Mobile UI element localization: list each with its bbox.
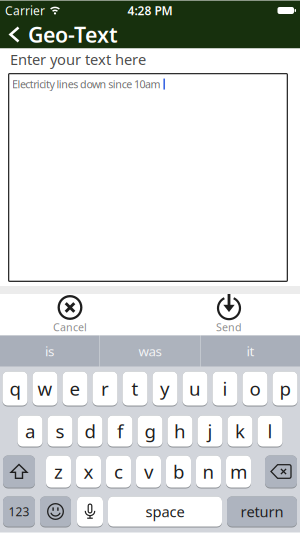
- button[interactable]: x: [76, 455, 101, 488]
- staticText: h: [174, 419, 186, 443]
- button[interactable]: space: [108, 496, 222, 527]
- staticText: j: [207, 419, 212, 443]
- button[interactable]: q: [2, 371, 27, 406]
- button[interactable]: Delete: [265, 455, 297, 488]
- button[interactable]: a: [17, 415, 42, 447]
- staticText: q: [9, 376, 20, 401]
- staticText: b: [173, 459, 184, 484]
- button[interactable]: j: [197, 415, 222, 447]
- button[interactable]: l: [257, 415, 282, 447]
- staticText: v: [144, 459, 153, 484]
- staticText: u: [189, 376, 201, 401]
- button[interactable]: t: [122, 371, 147, 406]
- staticText: Enter your text here: [10, 49, 146, 69]
- staticText: m: [230, 459, 247, 484]
- staticText: o: [249, 376, 260, 401]
- button[interactable]: m: [226, 455, 251, 488]
- button[interactable]: Shift: [3, 455, 35, 488]
- button[interactable]: w: [32, 371, 57, 406]
- staticText: l: [267, 419, 272, 443]
- button[interactable]: Emoji: [40, 496, 71, 527]
- button[interactable]: e: [62, 371, 87, 406]
- button[interactable]: was: [100, 335, 200, 366]
- button[interactable]: is: [0, 335, 99, 366]
- staticText: g: [144, 419, 155, 443]
- staticText: a: [25, 419, 35, 443]
- staticText: 4:28 PM: [127, 2, 172, 18]
- button[interactable]: f: [107, 415, 132, 447]
- staticText: r: [101, 376, 109, 401]
- staticText: is: [45, 342, 54, 360]
- staticText: z: [54, 459, 63, 484]
- button[interactable]: h: [167, 415, 192, 447]
- button[interactable]: s: [47, 415, 72, 447]
- button[interactable]: k: [227, 415, 252, 447]
- staticText: Geo-Text: [28, 20, 118, 49]
- button[interactable]: Back: [0, 21, 20, 48]
- button[interactable]: g: [137, 415, 162, 447]
- staticText: Send: [216, 320, 242, 334]
- staticText: x: [83, 459, 93, 484]
- staticText: i: [222, 376, 227, 401]
- button[interactable]: it: [201, 335, 300, 366]
- button[interactable]: v: [136, 455, 161, 488]
- button[interactable]: i: [212, 371, 237, 406]
- button[interactable]: n: [196, 455, 221, 488]
- staticText: Cancel: [53, 320, 87, 334]
- staticText: p: [279, 376, 290, 401]
- button[interactable]: return: [227, 496, 297, 527]
- staticText: n: [202, 459, 214, 484]
- staticText: was: [138, 342, 161, 360]
- button[interactable]: u: [182, 371, 207, 406]
- button[interactable]: Send: [207, 294, 251, 334]
- button[interactable]: d: [77, 415, 102, 447]
- staticText: return: [240, 502, 283, 521]
- staticText: c: [114, 459, 123, 484]
- button[interactable]: Numbers: [3, 496, 35, 527]
- staticText: 123: [8, 503, 29, 519]
- button[interactable]: Dictation: [77, 496, 103, 527]
- staticText: e: [69, 376, 80, 401]
- button[interactable]: y: [152, 371, 177, 406]
- staticText: it: [246, 342, 254, 360]
- button[interactable]: p: [272, 371, 297, 406]
- staticText: y: [160, 376, 170, 401]
- staticText: k: [235, 419, 245, 443]
- button[interactable]: Cancel: [48, 294, 92, 334]
- button[interactable]: o: [242, 371, 267, 406]
- button[interactable]: c: [106, 455, 131, 488]
- staticText: w: [37, 376, 52, 401]
- staticText: Electricity lines down since 10am: [12, 77, 160, 91]
- staticText: d: [84, 419, 95, 443]
- staticText: t: [131, 376, 138, 401]
- staticText: s: [55, 419, 64, 443]
- button[interactable]: b: [166, 455, 191, 488]
- staticText: Carrier: [5, 2, 45, 18]
- button[interactable]: z: [46, 455, 71, 488]
- staticText: f: [117, 419, 123, 443]
- button[interactable]: r: [92, 371, 117, 406]
- staticText: space: [145, 502, 184, 521]
